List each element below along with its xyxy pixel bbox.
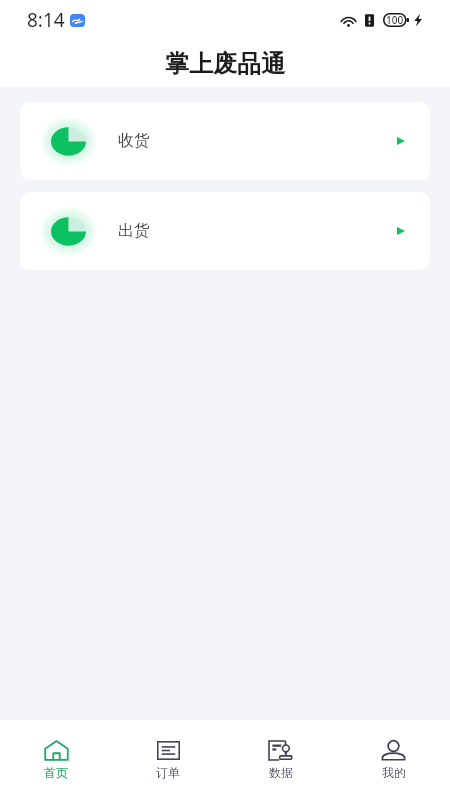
staticText: 掌上废品通 <box>165 49 285 79</box>
staticText: 订单 <box>156 765 180 780</box>
button[interactable]: 收货 <box>20 102 430 180</box>
staticText: 8:14 <box>27 7 65 33</box>
staticText: 收货 <box>118 131 150 151</box>
button[interactable]: Profile <box>337 720 450 800</box>
button[interactable]: Home <box>0 720 112 800</box>
staticText: 首页 <box>44 765 68 780</box>
staticText: 100 <box>386 13 404 27</box>
button[interactable]: Data <box>224 720 337 800</box>
other: Open 收货 <box>397 137 405 145</box>
other: Open 出货 <box>397 227 405 235</box>
staticText: 数据 <box>269 765 293 780</box>
button[interactable]: 出货 <box>20 192 430 270</box>
staticText: 我的 <box>382 765 406 780</box>
button[interactable]: Orders <box>112 720 224 800</box>
staticText: 出货 <box>118 221 150 241</box>
